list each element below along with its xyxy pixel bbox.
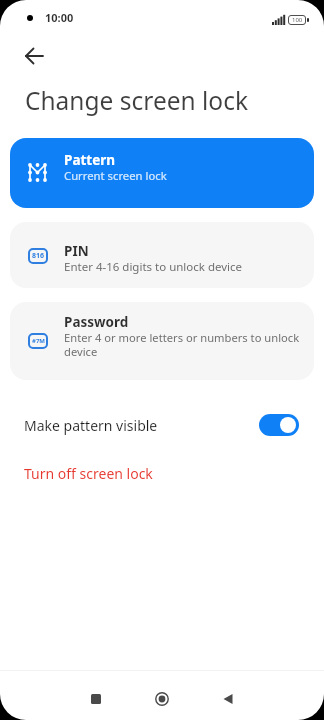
staticText: Current screen lock	[64, 168, 167, 183]
staticText: Enter 4-16 digits to unlock device	[64, 259, 243, 275]
staticText: Password	[64, 313, 129, 331]
staticText: Change screen lock	[25, 84, 249, 117]
staticText: 816	[32, 251, 45, 261]
staticText: 10:00	[45, 10, 74, 25]
staticText: #7M	[32, 337, 45, 345]
staticText: Enter 4 or more letters or numbers to un…	[64, 330, 309, 359]
staticText: Pattern	[64, 151, 116, 169]
staticText: Make pattern visible	[24, 416, 158, 435]
staticText: Turn off screen lock	[24, 464, 153, 483]
staticText: 100	[292, 16, 303, 24]
staticText: PIN	[64, 242, 89, 260]
